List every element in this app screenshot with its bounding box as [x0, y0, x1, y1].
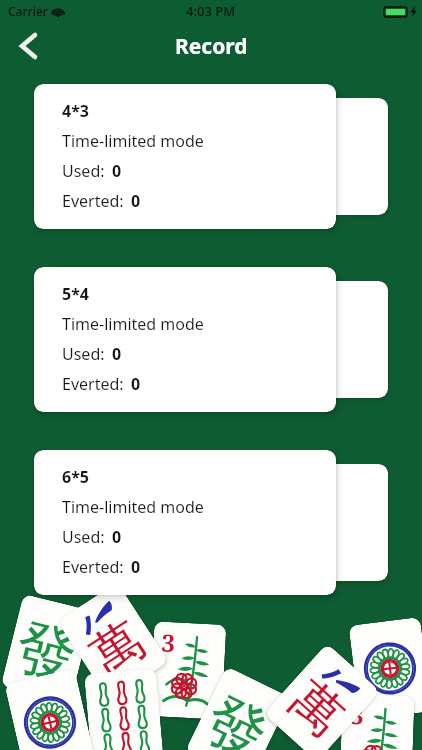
button[interactable]: 5*4	[34, 267, 336, 412]
staticText: Used:	[62, 526, 105, 548]
staticText: 0	[112, 526, 122, 548]
button[interactable]: Back	[10, 28, 46, 64]
button[interactable]: 4*3	[34, 84, 336, 229]
staticText: 萬	[79, 608, 155, 688]
staticText: 萬	[277, 668, 356, 749]
staticText: 0	[131, 556, 141, 578]
staticText: Everted:	[62, 556, 124, 578]
staticText: 0	[131, 190, 141, 212]
staticText: 0	[112, 343, 122, 365]
staticText: Everted:	[62, 190, 124, 212]
staticText: 0	[112, 160, 122, 182]
staticText: 4:03 PM	[186, 2, 236, 20]
staticText: 4*3	[62, 100, 89, 122]
staticText: Time-limited mode	[62, 130, 204, 152]
staticText: 發	[8, 608, 84, 696]
staticText: Time-limited mode	[62, 496, 204, 518]
staticText: Record	[175, 32, 248, 61]
staticText: Time-limited mode	[62, 313, 204, 335]
button[interactable]: 6*5	[34, 450, 336, 595]
staticText: Everted:	[62, 373, 124, 395]
staticText: 3	[161, 626, 176, 659]
staticText: Used:	[62, 160, 105, 182]
staticText: 5*4	[62, 283, 89, 305]
staticText: 6*5	[62, 466, 89, 488]
staticText: 發	[193, 680, 280, 750]
staticText: 0	[131, 373, 141, 395]
staticText: 3	[349, 698, 364, 731]
staticText: Carrier	[8, 3, 48, 19]
staticText: Used:	[62, 343, 105, 365]
